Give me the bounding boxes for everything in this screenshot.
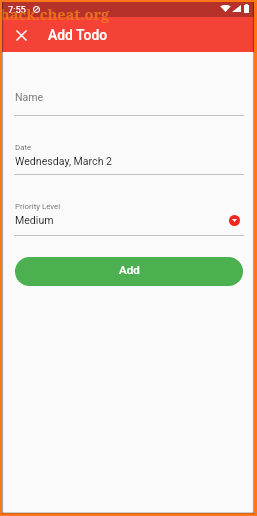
button[interactable]: Add bbox=[15, 257, 243, 286]
staticText: 7:55 bbox=[8, 4, 26, 15]
staticText: hack.cheat.org bbox=[0, 4, 110, 24]
staticText: Add Todo bbox=[48, 27, 108, 43]
staticText: Priority Level bbox=[15, 202, 61, 211]
staticText: Wednesday, March 2 bbox=[15, 155, 113, 167]
staticText: Add bbox=[119, 263, 140, 277]
staticText: Name bbox=[15, 91, 44, 103]
button[interactable]: Select priority level bbox=[229, 215, 240, 226]
staticText: Medium bbox=[15, 214, 54, 226]
staticText: Date bbox=[15, 143, 32, 152]
button[interactable]: Close bbox=[8, 22, 34, 48]
